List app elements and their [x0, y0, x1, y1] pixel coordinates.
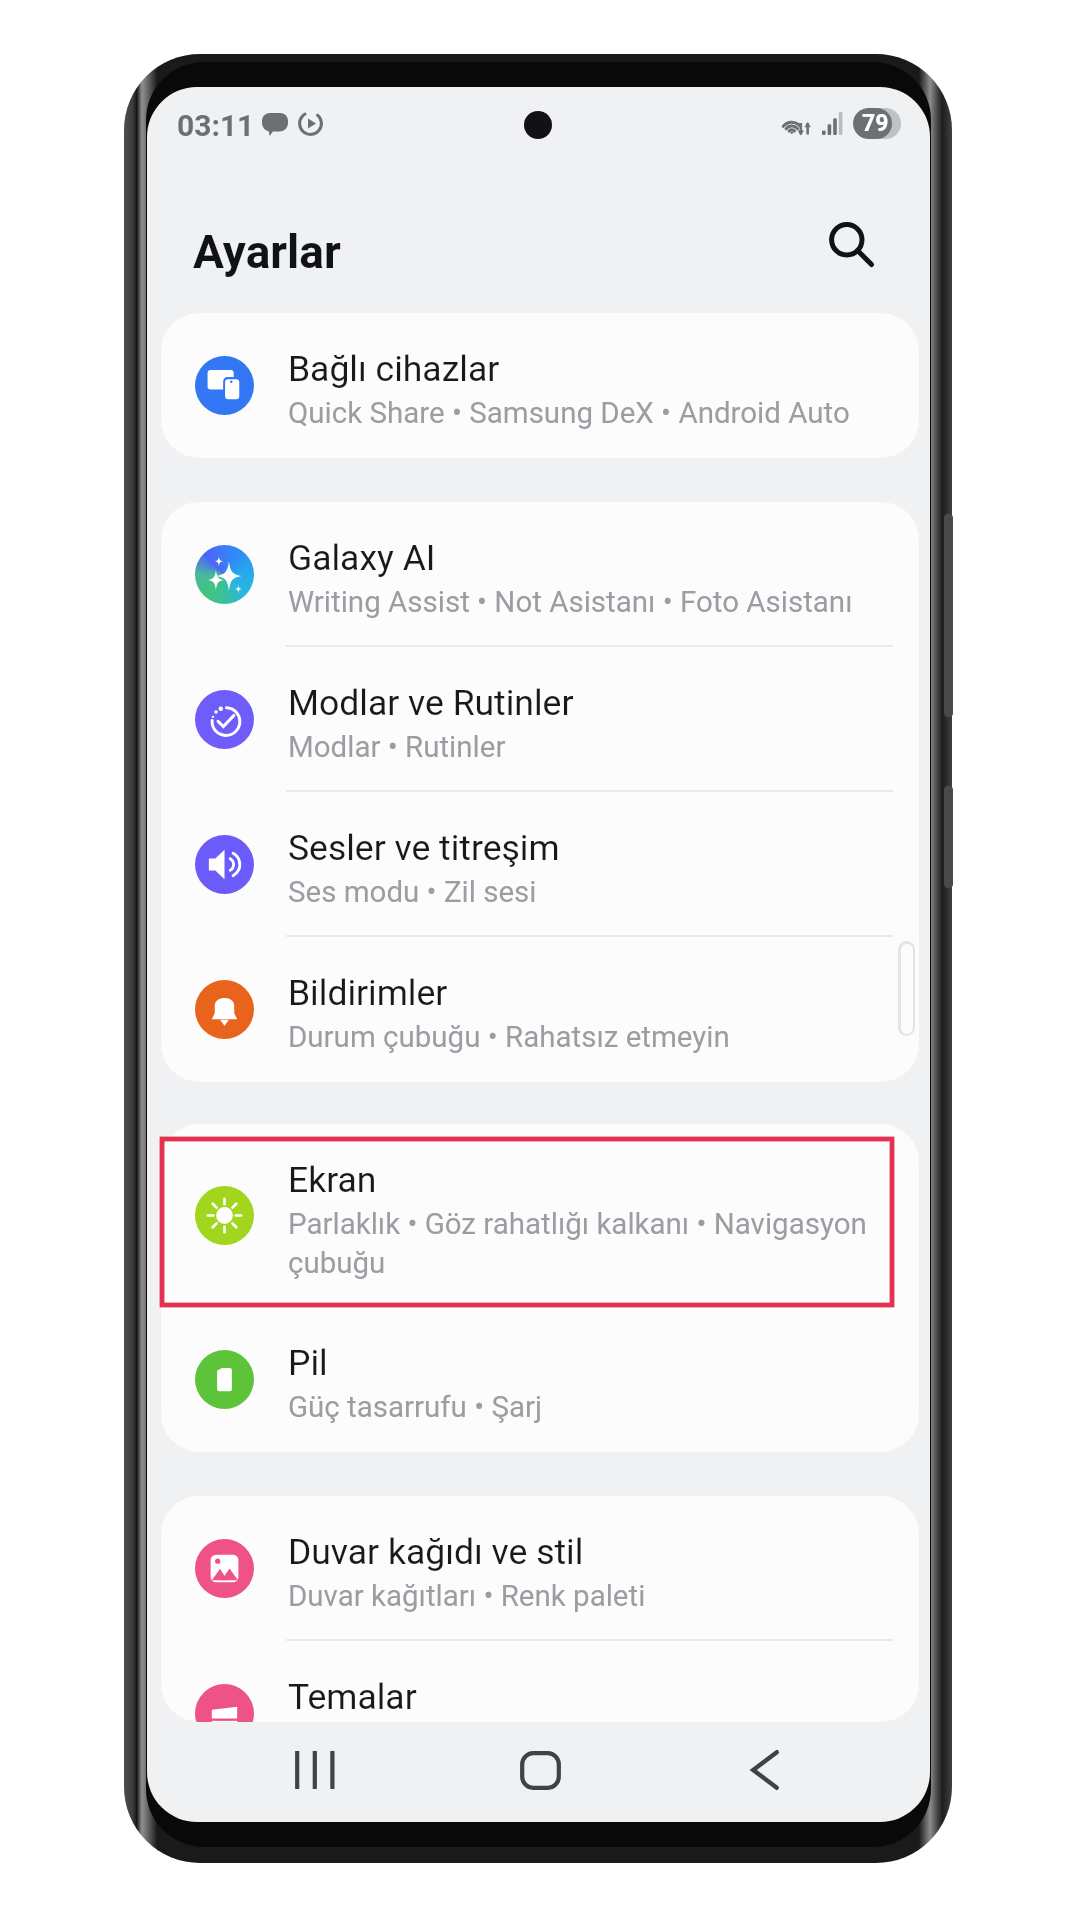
staticText: Duvar kağıdı ve stil: [288, 1531, 584, 1573]
button[interactable]: Galaxy AI: [161, 502, 919, 647]
staticText: Duvar kağıtları • Renk paleti: [288, 1579, 646, 1614]
staticText: Modlar • Rutinler: [288, 730, 506, 765]
button[interactable]: Back: [727, 1732, 803, 1808]
staticText: Writing Assist • Not Asistanı • Foto Asi…: [288, 585, 853, 620]
staticText: Temalar: [288, 1676, 417, 1718]
staticText: Modlar ve Rutinler: [288, 682, 574, 724]
button[interactable]: Ekran: [161, 1124, 919, 1307]
button[interactable]: Home: [502, 1732, 578, 1808]
staticText: 79: [862, 110, 889, 137]
button[interactable]: Temalar: [161, 1641, 919, 1722]
button[interactable]: Pil: [161, 1307, 919, 1452]
button[interactable]: Sesler ve titreşim: [161, 792, 919, 937]
staticText: Bağlı cihazlar: [288, 348, 500, 390]
staticText: Parlaklık • Göz rahatlığı kalkanı • Navi…: [288, 1207, 912, 1280]
staticText: Sesler ve titreşim: [288, 827, 560, 869]
staticText: 03:11: [177, 108, 255, 143]
button[interactable]: Duvar kağıdı ve stil: [161, 1496, 919, 1641]
staticText: Pil: [288, 1342, 328, 1384]
staticText: Bildirimler: [288, 972, 448, 1014]
staticText: Ekran: [288, 1159, 377, 1201]
staticText: Ses modu • Zil sesi: [288, 875, 537, 910]
button[interactable]: Bağlı cihazlar: [161, 313, 919, 458]
staticText: Güç tasarrufu • Şarj: [288, 1390, 543, 1425]
button[interactable]: Recent apps: [277, 1732, 353, 1808]
button[interactable]: Bildirimler: [161, 937, 919, 1082]
staticText: Galaxy AI: [288, 537, 436, 579]
staticText: Quick Share • Samsung DeX • Android Auto: [288, 396, 850, 431]
staticText: Durum çubuğu • Rahatsız etmeyin: [288, 1020, 730, 1055]
staticText: Ayarlar: [193, 225, 341, 279]
button[interactable]: Search: [816, 209, 888, 281]
button[interactable]: Modlar ve Rutinler: [161, 647, 919, 792]
